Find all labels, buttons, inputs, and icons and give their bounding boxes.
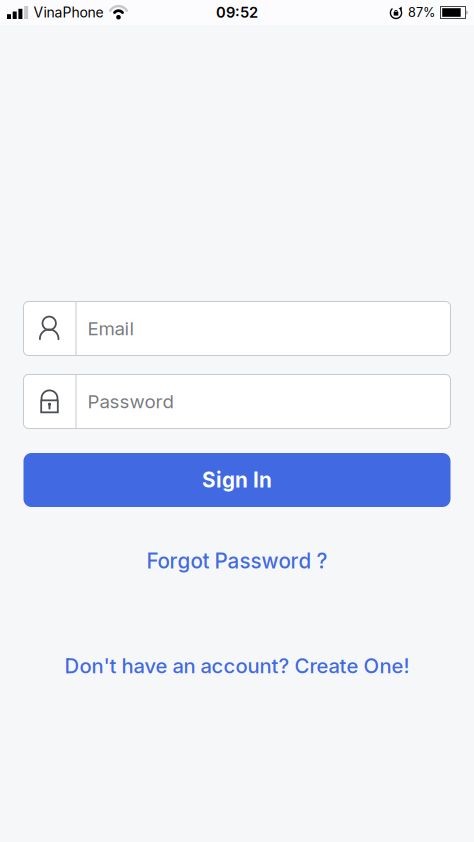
staticText: Forgot Password ? [146, 548, 327, 573]
button[interactable]: Sign In [23, 453, 450, 507]
staticText: 87% [408, 5, 435, 20]
button[interactable]: Forgot Password ? [146, 548, 327, 573]
staticText: VinaPhone [33, 4, 103, 21]
staticText: Password [87, 390, 173, 412]
button[interactable]: Don't have an account? Create One! [64, 654, 409, 678]
staticText: 09:52 [216, 4, 258, 21]
button[interactable]: Email [23, 301, 450, 355]
button[interactable]: Password [23, 374, 450, 428]
staticText: Don't have an account? Create One! [64, 654, 409, 678]
staticText: Sign In [202, 467, 272, 492]
staticText: Email [87, 317, 134, 339]
